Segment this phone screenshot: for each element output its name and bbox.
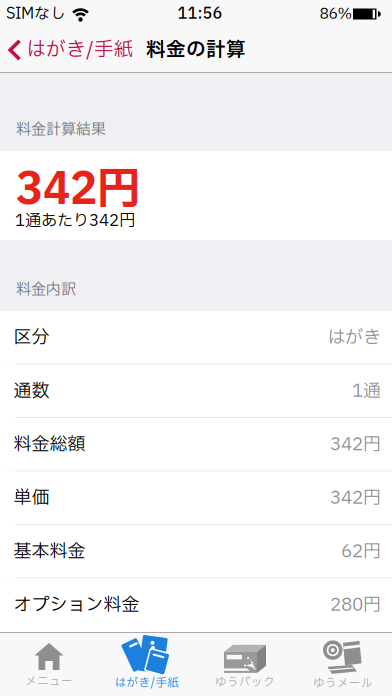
- button[interactable]: はがき/手紙: [98, 633, 196, 696]
- staticText: SIMなし: [6, 2, 66, 26]
- staticText: ゆうパック: [215, 674, 275, 691]
- staticText: 通数: [13, 378, 49, 405]
- staticText: 料金総額: [13, 431, 85, 458]
- staticText: オプション料金: [13, 592, 139, 619]
- staticText: 料金の計算: [146, 35, 246, 65]
- button[interactable]: メニュー: [0, 633, 98, 696]
- staticText: 11:56: [177, 2, 222, 26]
- button[interactable]: ゆうメール: [294, 633, 392, 696]
- staticText: 342円: [330, 431, 381, 458]
- staticText: 区分: [13, 324, 49, 351]
- staticText: 342円: [16, 158, 141, 223]
- staticText: 基本料金: [13, 538, 85, 565]
- staticText: 86%: [319, 3, 352, 25]
- staticText: はがき/手紙: [114, 674, 179, 692]
- staticText: 1通: [352, 378, 381, 405]
- staticText: 62円: [341, 538, 381, 565]
- staticText: はがき/手紙: [26, 35, 134, 65]
- staticText: ゆうメール: [313, 675, 373, 692]
- button[interactable]: はがき/手紙: [0, 35, 134, 65]
- staticText: 料金計算結果: [16, 118, 106, 141]
- staticText: 1通あたり342円: [15, 209, 135, 233]
- staticText: 280円: [330, 592, 381, 619]
- staticText: メニュー: [25, 673, 73, 690]
- staticText: 料金内訳: [16, 278, 76, 301]
- staticText: 342円: [330, 485, 381, 512]
- staticText: 単価: [13, 485, 49, 512]
- button[interactable]: ゆうパック: [196, 633, 294, 696]
- staticText: はがき: [327, 324, 381, 351]
